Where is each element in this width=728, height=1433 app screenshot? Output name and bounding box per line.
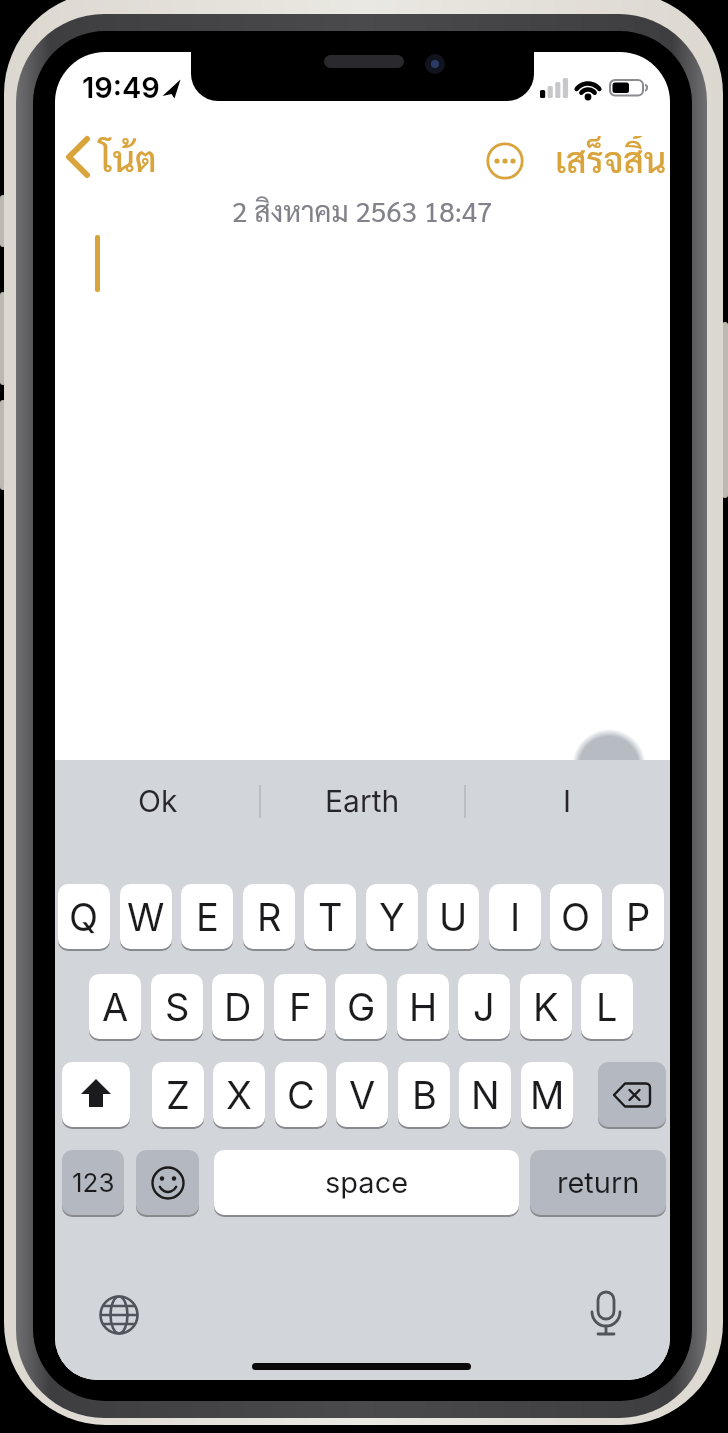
staticText: D [224,984,252,1030]
button[interactable]: C [275,1062,327,1127]
staticText: G [347,984,376,1030]
button[interactable] [598,1062,666,1127]
button[interactable]: X [213,1062,265,1127]
staticText: B [412,1072,437,1118]
button[interactable]: L [581,974,633,1039]
button[interactable]: F [274,974,326,1039]
button[interactable]: Y [366,884,418,949]
staticText: K [533,984,559,1030]
staticText: X [226,1072,252,1118]
staticText: M [530,1072,565,1118]
staticText: F [289,984,312,1030]
button[interactable]: N [459,1062,511,1127]
button[interactable]: space [214,1150,519,1215]
staticText: C [287,1072,315,1118]
button[interactable]: U [427,884,479,949]
staticText: space [325,1165,409,1200]
button[interactable] [62,1062,130,1127]
button[interactable]: Q [58,884,110,949]
button[interactable]: Ok [55,782,260,820]
staticText: 2 สิงหาคม 2563 18:47 [232,192,493,228]
button[interactable]: J [458,974,510,1039]
staticText: I [563,783,572,819]
staticText: J [473,984,495,1030]
staticText: A [102,984,129,1030]
staticText: I [510,894,521,940]
button[interactable]: E [181,884,233,949]
button[interactable]: Z [152,1062,204,1127]
staticText: return [557,1165,640,1200]
staticText: O [561,894,591,940]
button[interactable]: K [520,974,572,1039]
button[interactable]: T [304,884,356,949]
staticText: W [127,894,165,940]
button[interactable]: return [530,1150,666,1215]
button[interactable] [98,1294,140,1336]
button[interactable]: Earth [260,782,465,820]
button[interactable]: O [550,884,602,949]
staticText: R [257,894,282,940]
staticText: โน้ต [99,135,157,180]
button[interactable]: V [336,1062,388,1127]
staticText: Earth [325,783,400,819]
staticText: T [318,894,343,940]
button[interactable]: S [151,974,203,1039]
staticText: N [471,1072,500,1118]
button[interactable]: I [465,782,670,820]
button[interactable]: R [243,884,295,949]
button[interactable] [136,1150,199,1215]
staticText: P [626,894,651,940]
staticText: Q [69,894,99,940]
button[interactable] [486,142,524,180]
staticText: H [409,984,438,1030]
staticText: L [596,984,618,1030]
button[interactable]: G [335,974,387,1039]
button[interactable]: 123 [62,1150,124,1215]
staticText: S [165,984,190,1030]
staticText: Z [166,1072,190,1118]
button[interactable]: H [397,974,449,1039]
button[interactable]: โน้ต [61,134,221,180]
staticText: Ok [138,783,178,819]
button[interactable]: A [89,974,141,1039]
button[interactable] [586,1290,626,1342]
staticText: เสร็จสิ้น [555,136,667,180]
staticText: U [439,894,468,940]
button[interactable]: D [212,974,264,1039]
button[interactable]: I [489,884,541,949]
button[interactable]: P [612,884,664,949]
button[interactable]: B [398,1062,450,1127]
button[interactable]: W [120,884,172,949]
button[interactable]: M [521,1062,573,1127]
staticText: 19:49 [82,70,160,105]
staticText: E [196,894,219,940]
staticText: Y [379,894,405,940]
button[interactable]: เสร็จสิ้น [515,136,667,180]
staticText: V [349,1072,376,1118]
staticText: 123 [72,1167,115,1198]
